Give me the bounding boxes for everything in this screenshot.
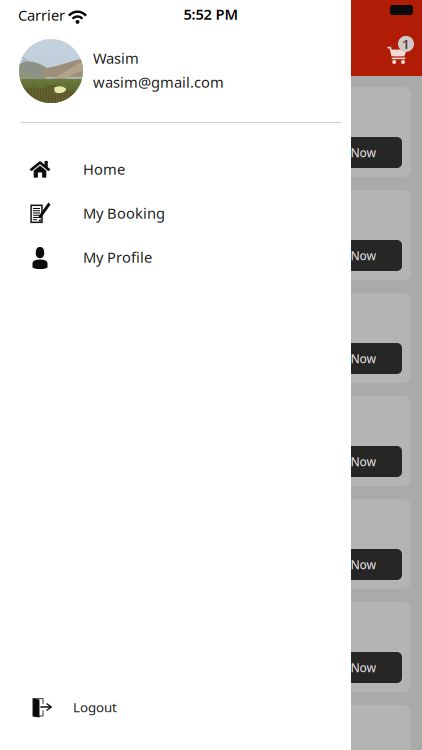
button[interactable]: Book Now	[293, 343, 402, 374]
staticText: Book Now	[318, 659, 376, 675]
staticText: Book Now	[318, 144, 376, 160]
staticText: Carrier	[18, 5, 65, 25]
staticText: Book Now	[318, 247, 376, 263]
button[interactable]: Book Now	[293, 652, 402, 683]
staticText: wasim@gmail.com	[93, 72, 224, 92]
staticText: Book Now	[318, 556, 376, 572]
button[interactable]: Cart, 1 item	[387, 41, 419, 67]
staticText: 5:52 PM	[183, 4, 238, 24]
button[interactable]: Book Now	[293, 240, 402, 271]
staticText: My Profile	[83, 247, 152, 267]
staticText: Wasim	[93, 48, 139, 68]
button[interactable]: Home	[0, 147, 351, 191]
button[interactable]: My Booking	[0, 191, 351, 235]
button[interactable]: Book Now	[293, 137, 402, 168]
staticText: My Booking	[83, 203, 165, 223]
staticText: Book Now	[318, 350, 376, 366]
staticText: Book Now	[318, 453, 376, 469]
button[interactable]: My Profile	[0, 235, 351, 279]
button[interactable]: Book Now	[293, 549, 402, 580]
button[interactable]: Book Now	[293, 446, 402, 477]
staticText: Logout	[73, 698, 117, 716]
button[interactable]: Logout	[0, 685, 351, 729]
staticText: Home	[83, 159, 125, 179]
staticText: 1	[402, 35, 410, 53]
